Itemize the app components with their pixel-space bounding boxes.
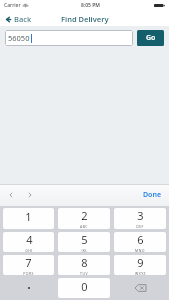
- button[interactable]: 2: [58, 208, 110, 229]
- staticText: 4: [26, 232, 33, 247]
- button[interactable]: Period: [3, 278, 54, 298]
- staticText: 1: [25, 209, 32, 224]
- staticText: TUV: [80, 271, 88, 275]
- staticText: Carrier: [4, 2, 21, 9]
- staticText: 0: [81, 279, 88, 294]
- button[interactable]: Delete: [114, 278, 166, 298]
- staticText: Back: [14, 14, 32, 24]
- button[interactable]: Previous field: [5, 189, 17, 201]
- staticText: Find Delivery: [61, 14, 109, 24]
- button[interactable]: 4: [3, 232, 54, 252]
- staticText: WXYZ: [135, 271, 146, 275]
- button[interactable]: 0: [58, 278, 110, 298]
- staticText: GHI: [25, 248, 33, 252]
- staticText: 6: [137, 232, 144, 247]
- staticText: MNO: [135, 248, 145, 252]
- staticText: 9: [137, 255, 144, 270]
- staticText: 5: [81, 232, 88, 247]
- staticText: 7: [25, 255, 32, 270]
- button[interactable]: Next field: [24, 189, 36, 201]
- button[interactable]: 1: [3, 208, 54, 229]
- button[interactable]: 56050: [5, 30, 133, 46]
- staticText: Go: [146, 33, 156, 43]
- staticText: PQRS: [23, 271, 34, 275]
- other: Back: [5, 16, 12, 23]
- button[interactable]: 8: [58, 255, 110, 275]
- staticText: 8: [81, 255, 88, 270]
- button[interactable]: Back: [0, 12, 38, 26]
- staticText: 56050: [8, 33, 30, 43]
- staticText: 2: [81, 208, 88, 223]
- staticText: Done: [143, 190, 162, 200]
- button[interactable]: 6: [114, 232, 166, 252]
- staticText: DEF: [136, 224, 144, 229]
- staticText: JKL: [81, 248, 88, 252]
- staticText: 8:05 PM: [81, 2, 100, 9]
- button[interactable]: 9: [114, 255, 166, 275]
- staticText: ABC: [80, 224, 88, 229]
- button[interactable]: Go: [137, 30, 164, 46]
- button[interactable]: 5: [58, 232, 110, 252]
- button[interactable]: 3: [114, 208, 166, 229]
- button[interactable]: 7: [3, 255, 54, 275]
- staticText: 3: [137, 208, 144, 223]
- button[interactable]: Done: [136, 186, 169, 204]
